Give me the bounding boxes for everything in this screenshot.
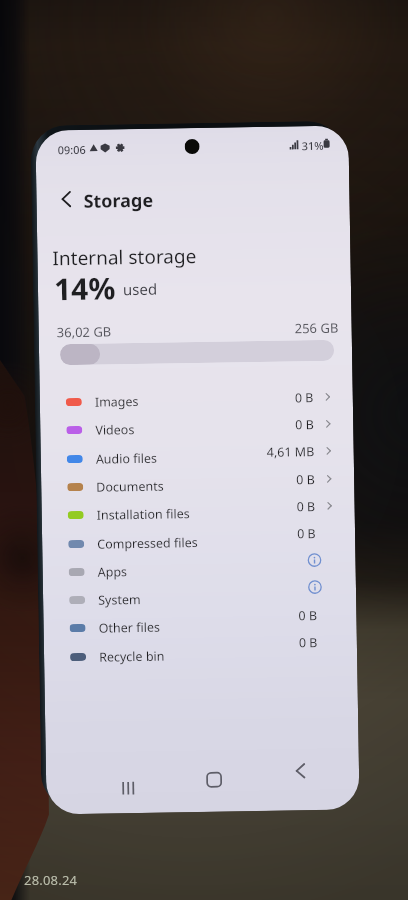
- button[interactable]: Recent apps: [108, 768, 149, 809]
- staticText: 36,02 GB: [56, 322, 112, 341]
- staticText: System: [98, 591, 141, 609]
- staticText: Documents: [96, 478, 164, 496]
- staticText: 0 B: [297, 525, 316, 542]
- staticText: 0 B: [295, 389, 314, 406]
- staticText: Audio files: [96, 450, 158, 468]
- button[interactable]: Compressed files: [42, 525, 355, 559]
- staticText: Installation files: [97, 505, 191, 524]
- button[interactable]: Videos: [40, 411, 353, 445]
- staticText: Internal storage: [52, 243, 197, 271]
- staticText: Compressed files: [97, 534, 198, 553]
- staticText: 14%: [54, 267, 116, 309]
- staticText: 0 B: [299, 634, 318, 651]
- staticText: 09:06: [57, 142, 87, 157]
- staticText: 31%: [301, 138, 324, 153]
- button[interactable]: System: [43, 581, 356, 615]
- staticText: Storage: [83, 188, 154, 214]
- staticText: 0 B: [296, 498, 316, 515]
- button[interactable]: Home: [194, 759, 234, 800]
- staticText: Other files: [98, 619, 161, 637]
- staticText: 4,61 MB: [267, 443, 315, 461]
- staticText: Apps: [97, 563, 128, 581]
- button[interactable]: Back: [44, 177, 89, 221]
- button[interactable]: Images: [40, 383, 353, 417]
- button[interactable]: Apps: [42, 553, 356, 587]
- staticText: 0 B: [295, 416, 314, 433]
- staticText: 0 B: [296, 471, 315, 488]
- staticText: 0 B: [298, 607, 318, 624]
- button[interactable]: Back: [280, 750, 320, 791]
- button[interactable]: Documents: [41, 468, 354, 502]
- staticText: Images: [95, 393, 139, 411]
- staticText: Recycle bin: [99, 648, 165, 666]
- staticText: used: [123, 279, 158, 299]
- button[interactable]: Audio files: [41, 440, 354, 474]
- button[interactable]: Other files: [43, 609, 357, 643]
- button[interactable]: Recycle bin: [44, 638, 357, 672]
- staticText: 256 GB: [294, 319, 339, 337]
- button[interactable]: Installation files: [41, 496, 355, 530]
- staticText: Videos: [95, 421, 135, 439]
- staticText: 28.08.24: [24, 871, 78, 889]
